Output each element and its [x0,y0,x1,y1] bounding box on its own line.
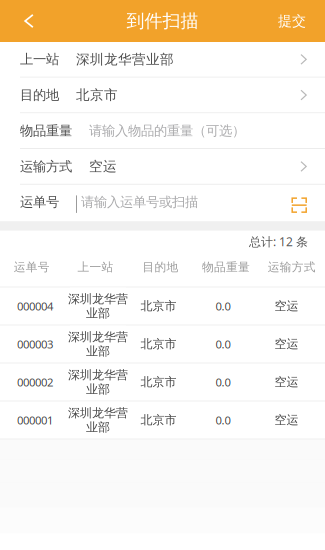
button[interactable]: 000002 [0,364,325,401]
staticText: 深圳龙华营 [68,291,128,307]
staticText: 业部 [86,382,110,397]
staticText: 空运 [275,412,299,428]
button[interactable]: 上一站 [0,42,325,77]
button[interactable]: 000003 [0,326,325,363]
staticText: 深圳龙华营 [68,405,128,421]
button[interactable]: 000004 [0,288,325,325]
staticText: 北京市 [140,336,176,352]
staticText: 空运 [89,158,117,175]
staticText: 到件扫描 [126,10,198,32]
staticText: 000003 [17,336,53,352]
staticText: 北京市 [140,298,176,314]
button[interactable]: 目的地 [0,78,325,112]
staticText: 000001 [17,412,53,428]
staticText: 000004 [17,298,53,314]
staticText: 运输方式 [268,260,316,274]
staticText: 请输入运单号或扫描 [81,194,198,211]
staticText: 业部 [86,344,110,359]
staticText: 空运 [275,298,299,314]
button[interactable]: 返回 [11,0,47,42]
button[interactable]: 物品重量 [0,113,325,148]
staticText: 目的地 [142,260,178,274]
staticText: 北京市 [140,412,176,428]
staticText: 物品重量 [20,122,72,139]
button[interactable]: 000001 [0,402,325,439]
staticText: 业部 [86,420,110,435]
staticText: 目的地 [20,87,59,103]
staticText: 北京市 [76,86,118,104]
staticText: 上一站 [77,260,113,274]
staticText: 上一站 [20,51,59,68]
staticText: 0.0 [215,374,230,390]
staticText: 0.0 [215,412,230,428]
button[interactable]: 运单号 [0,185,325,219]
staticText: 深圳龙华营业部 [76,51,174,68]
staticText: 深圳龙华营 [68,367,128,383]
staticText: 请输入物品的重量（可选） [89,122,245,139]
staticText: 空运 [275,336,299,352]
staticText: 物品重量 [202,260,250,274]
staticText: 000002 [17,374,53,390]
staticText: 运输方式 [20,158,72,175]
staticText: 北京市 [140,374,176,390]
staticText: 0.0 [215,298,230,314]
staticText: 业部 [86,306,110,321]
button[interactable]: 提交 [278,0,325,42]
button[interactable]: 运输方式 [0,149,325,184]
staticText: 深圳龙华营 [68,329,128,345]
staticText: 提交 [278,12,306,30]
staticText: 空运 [275,374,299,390]
staticText: 运单号 [14,260,50,274]
staticText: 总计: 12 条 [249,233,308,250]
staticText: 0.0 [215,336,230,352]
staticText: 运单号 [20,194,59,211]
